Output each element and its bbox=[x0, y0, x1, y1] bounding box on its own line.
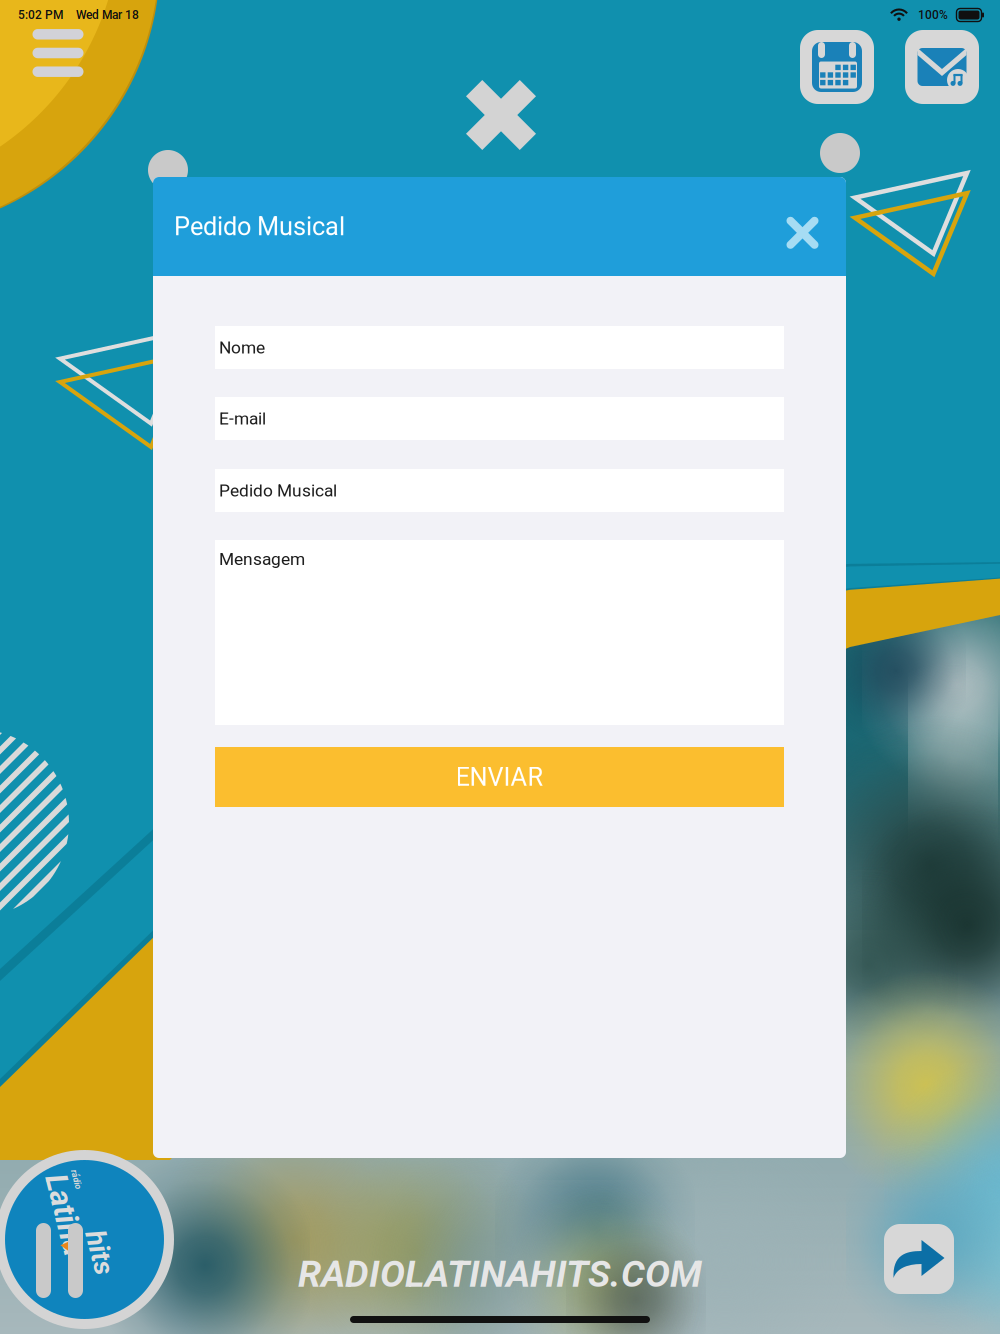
staticText: Nome bbox=[219, 337, 265, 358]
button[interactable]: Menu bbox=[26, 23, 90, 83]
button[interactable]: Close bbox=[767, 198, 837, 268]
button[interactable]: Schedule bbox=[800, 30, 874, 104]
staticText: 100% bbox=[918, 8, 948, 22]
staticText: E-mail bbox=[219, 408, 266, 429]
staticText: Mensagem bbox=[219, 549, 305, 569]
staticText: Wed Mar 18 bbox=[76, 8, 139, 22]
button[interactable]: Song request bbox=[905, 30, 979, 104]
staticText: ENVIAR bbox=[455, 762, 543, 792]
staticText: Latina bbox=[14, 1222, 97, 1258]
button[interactable]: ENVIAR bbox=[215, 747, 784, 807]
staticText: Pedido Musical bbox=[174, 212, 345, 241]
staticText: hits bbox=[78, 1199, 123, 1232]
button[interactable]: Share bbox=[884, 1224, 954, 1294]
staticText: Pedido Musical bbox=[219, 480, 337, 501]
staticText: 5:02 PM bbox=[18, 8, 63, 22]
staticText: RADIOLATINAHITS.COM bbox=[298, 1252, 702, 1296]
